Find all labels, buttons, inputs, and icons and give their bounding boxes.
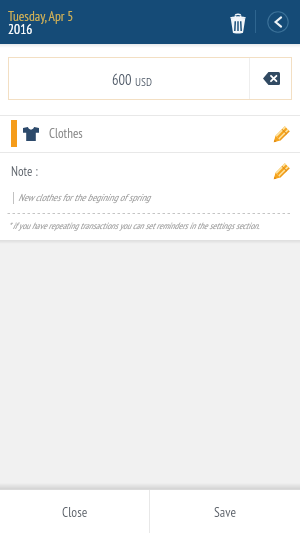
button[interactable]: Save: [150, 490, 300, 533]
staticText: 600: [112, 70, 132, 89]
button[interactable]: Edit category: [262, 117, 298, 153]
staticText: Clothes: [49, 125, 83, 142]
staticText: * if you have repeating transactions you…: [8, 220, 260, 232]
button[interactable]: Edit note: [262, 154, 298, 190]
staticText: Tuesday, Apr 5: [8, 7, 74, 24]
button[interactable]: Back: [263, 7, 292, 36]
button[interactable]: Clothes: [0, 115, 300, 152]
staticText: New clothes for the begining of spring: [18, 191, 150, 204]
staticText: 2016: [8, 20, 33, 37]
staticText: Save: [214, 503, 236, 520]
staticText: USD: [135, 74, 152, 89]
button[interactable]: Delete: [223, 9, 253, 39]
button[interactable]: Close: [0, 490, 149, 533]
staticText: Close: [62, 503, 88, 520]
staticText: Note :: [11, 163, 38, 180]
button[interactable]: Backspace: [251, 57, 292, 100]
